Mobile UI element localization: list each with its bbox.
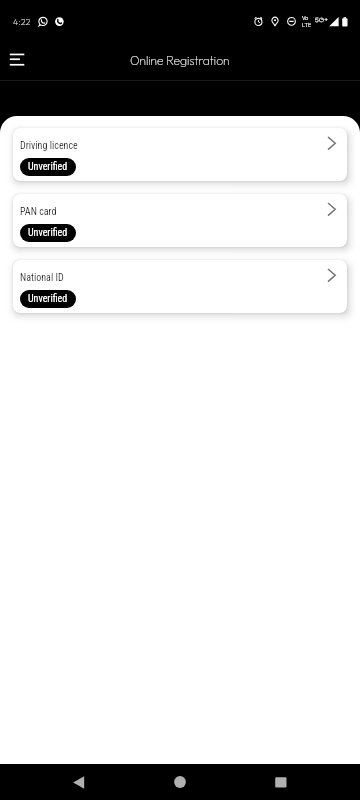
- staticText: 5G+: [315, 15, 328, 24]
- staticText: LTE: [302, 22, 312, 29]
- staticText: Online Registration: [130, 53, 230, 68]
- staticText: PAN card: [20, 206, 57, 218]
- button[interactable]: Driving licence: [13, 128, 347, 181]
- button[interactable]: Open navigation menu: [0, 38, 44, 82]
- button[interactable]: PAN card: [13, 194, 347, 247]
- staticText: Vo: [302, 15, 309, 22]
- button[interactable]: Home: [159, 764, 201, 800]
- staticText: Unverified: [28, 293, 68, 305]
- staticText: 4:22: [13, 16, 31, 27]
- button[interactable]: National ID: [13, 260, 347, 313]
- button[interactable]: Recent apps: [259, 764, 301, 800]
- staticText: Driving licence: [20, 140, 78, 152]
- staticText: Unverified: [28, 161, 68, 173]
- staticText: National ID: [20, 272, 64, 284]
- staticText: Unverified: [28, 227, 68, 239]
- button[interactable]: Back: [58, 764, 100, 800]
